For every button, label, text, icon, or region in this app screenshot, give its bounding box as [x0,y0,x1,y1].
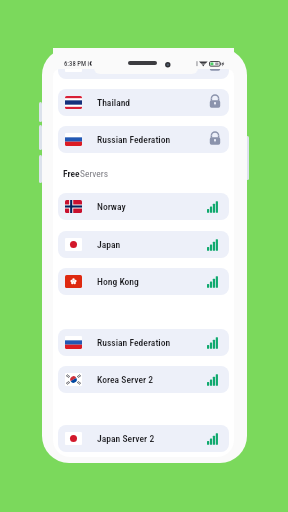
button[interactable]: Korea Server 2 [58,366,229,393]
staticText: Free [63,168,80,179]
button[interactable]: Japan [58,231,229,258]
staticText: Norway [97,201,126,212]
button[interactable]: Russian Federation [58,126,229,153]
staticText: Japan Server 2 [97,433,155,444]
button[interactable]: Thailand [58,89,229,116]
staticText: Russian Federation [97,134,171,145]
other: Premium server, locked [208,131,222,145]
staticText: Russian Federation [97,337,171,348]
button[interactable]: Norway [58,193,229,220]
staticText: 6:38 PM [64,60,87,68]
staticText: Korea Server 2 [97,374,154,385]
other: Signal strength [207,201,218,213]
other: Signal strength [207,276,218,288]
other: Signal strength [207,337,218,349]
other: Signal strength [207,433,218,445]
button[interactable]: Russian Federation [58,329,229,356]
other: Signal strength [207,374,218,386]
staticText: Hong Kong [97,276,139,287]
staticText: Thailand [97,97,131,108]
button[interactable]: Japan Server 2 [58,425,229,452]
staticText: Japan [97,239,121,250]
other: Signal strength [207,239,218,251]
other: Premium server, locked [208,94,222,108]
button[interactable]: Hong Kong [58,268,229,295]
staticText: Servers [80,168,109,179]
other: Premium server, locked [208,69,222,71]
button[interactable]: Japan Server 3 [58,69,229,79]
